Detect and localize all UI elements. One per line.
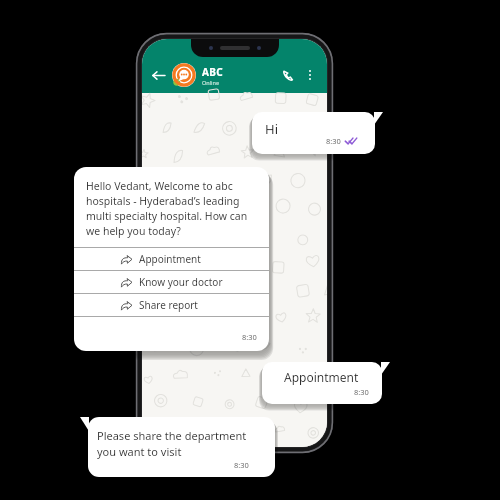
- staticText: Know your doctor: [139, 275, 223, 289]
- staticText: Appointment: [284, 369, 359, 385]
- button[interactable]: Know your doctor: [74, 271, 269, 293]
- staticText: Online: [202, 79, 220, 86]
- staticText: 8:30: [326, 136, 341, 146]
- button[interactable]: Appointment: [262, 362, 390, 404]
- button[interactable]: Please share the department you want to …: [80, 417, 275, 477]
- staticText: Hello Vedant, Welcome to abc hospitals -…: [86, 179, 258, 238]
- staticText: Please share the department you want to …: [97, 428, 265, 459]
- staticText: Hi: [265, 120, 278, 138]
- staticText: Share report: [139, 298, 198, 312]
- staticText: 8:30: [242, 332, 257, 342]
- staticText: 8:30: [354, 387, 369, 397]
- button[interactable]: Hi: [252, 112, 383, 154]
- button[interactable]: Hello Vedant, Welcome to abc hospitals -…: [74, 167, 269, 351]
- button[interactable]: Share report: [74, 294, 269, 316]
- staticText: ABC: [202, 65, 224, 79]
- button[interactable]: Back: [149, 66, 167, 84]
- staticText: Appointment: [139, 252, 201, 266]
- staticText: 8:30: [234, 460, 249, 470]
- button[interactable]: Call: [278, 65, 298, 85]
- button[interactable]: More options: [301, 66, 319, 84]
- button[interactable]: Appointment: [74, 248, 269, 270]
